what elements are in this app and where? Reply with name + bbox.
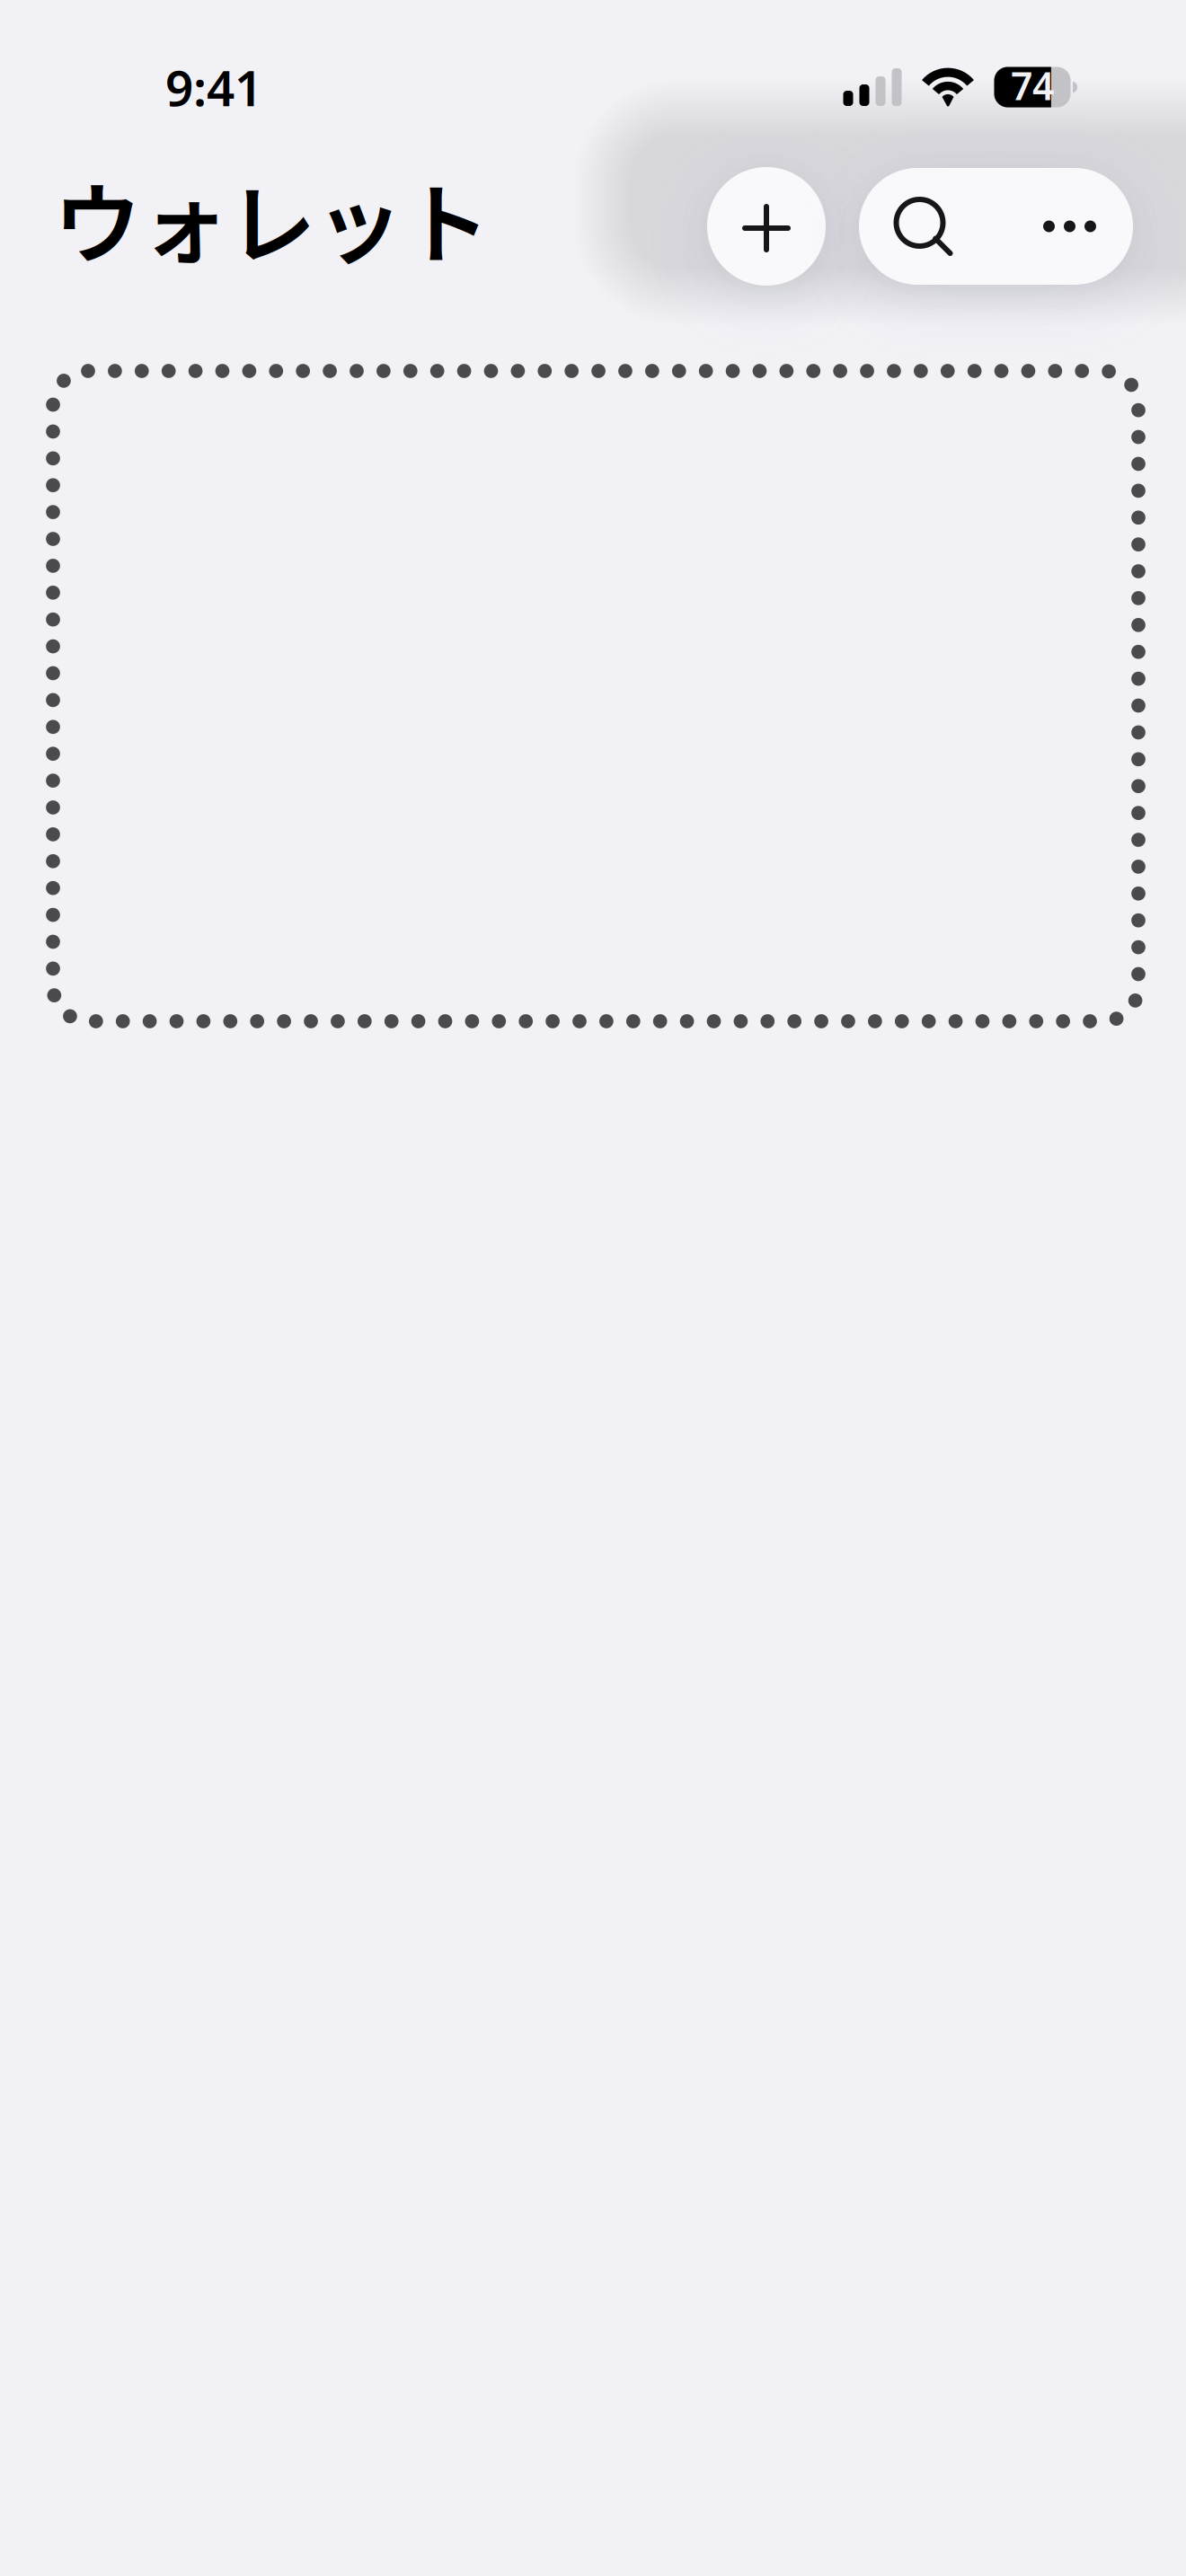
staticText: ウォレット [54, 155, 490, 281]
button[interactable]: 検索 [859, 168, 991, 285]
staticText: 74 [1011, 60, 1054, 111]
button[interactable]: その他 [991, 168, 1133, 285]
staticText: 9:41 [165, 55, 262, 120]
button[interactable]: 追加 [707, 167, 826, 286]
